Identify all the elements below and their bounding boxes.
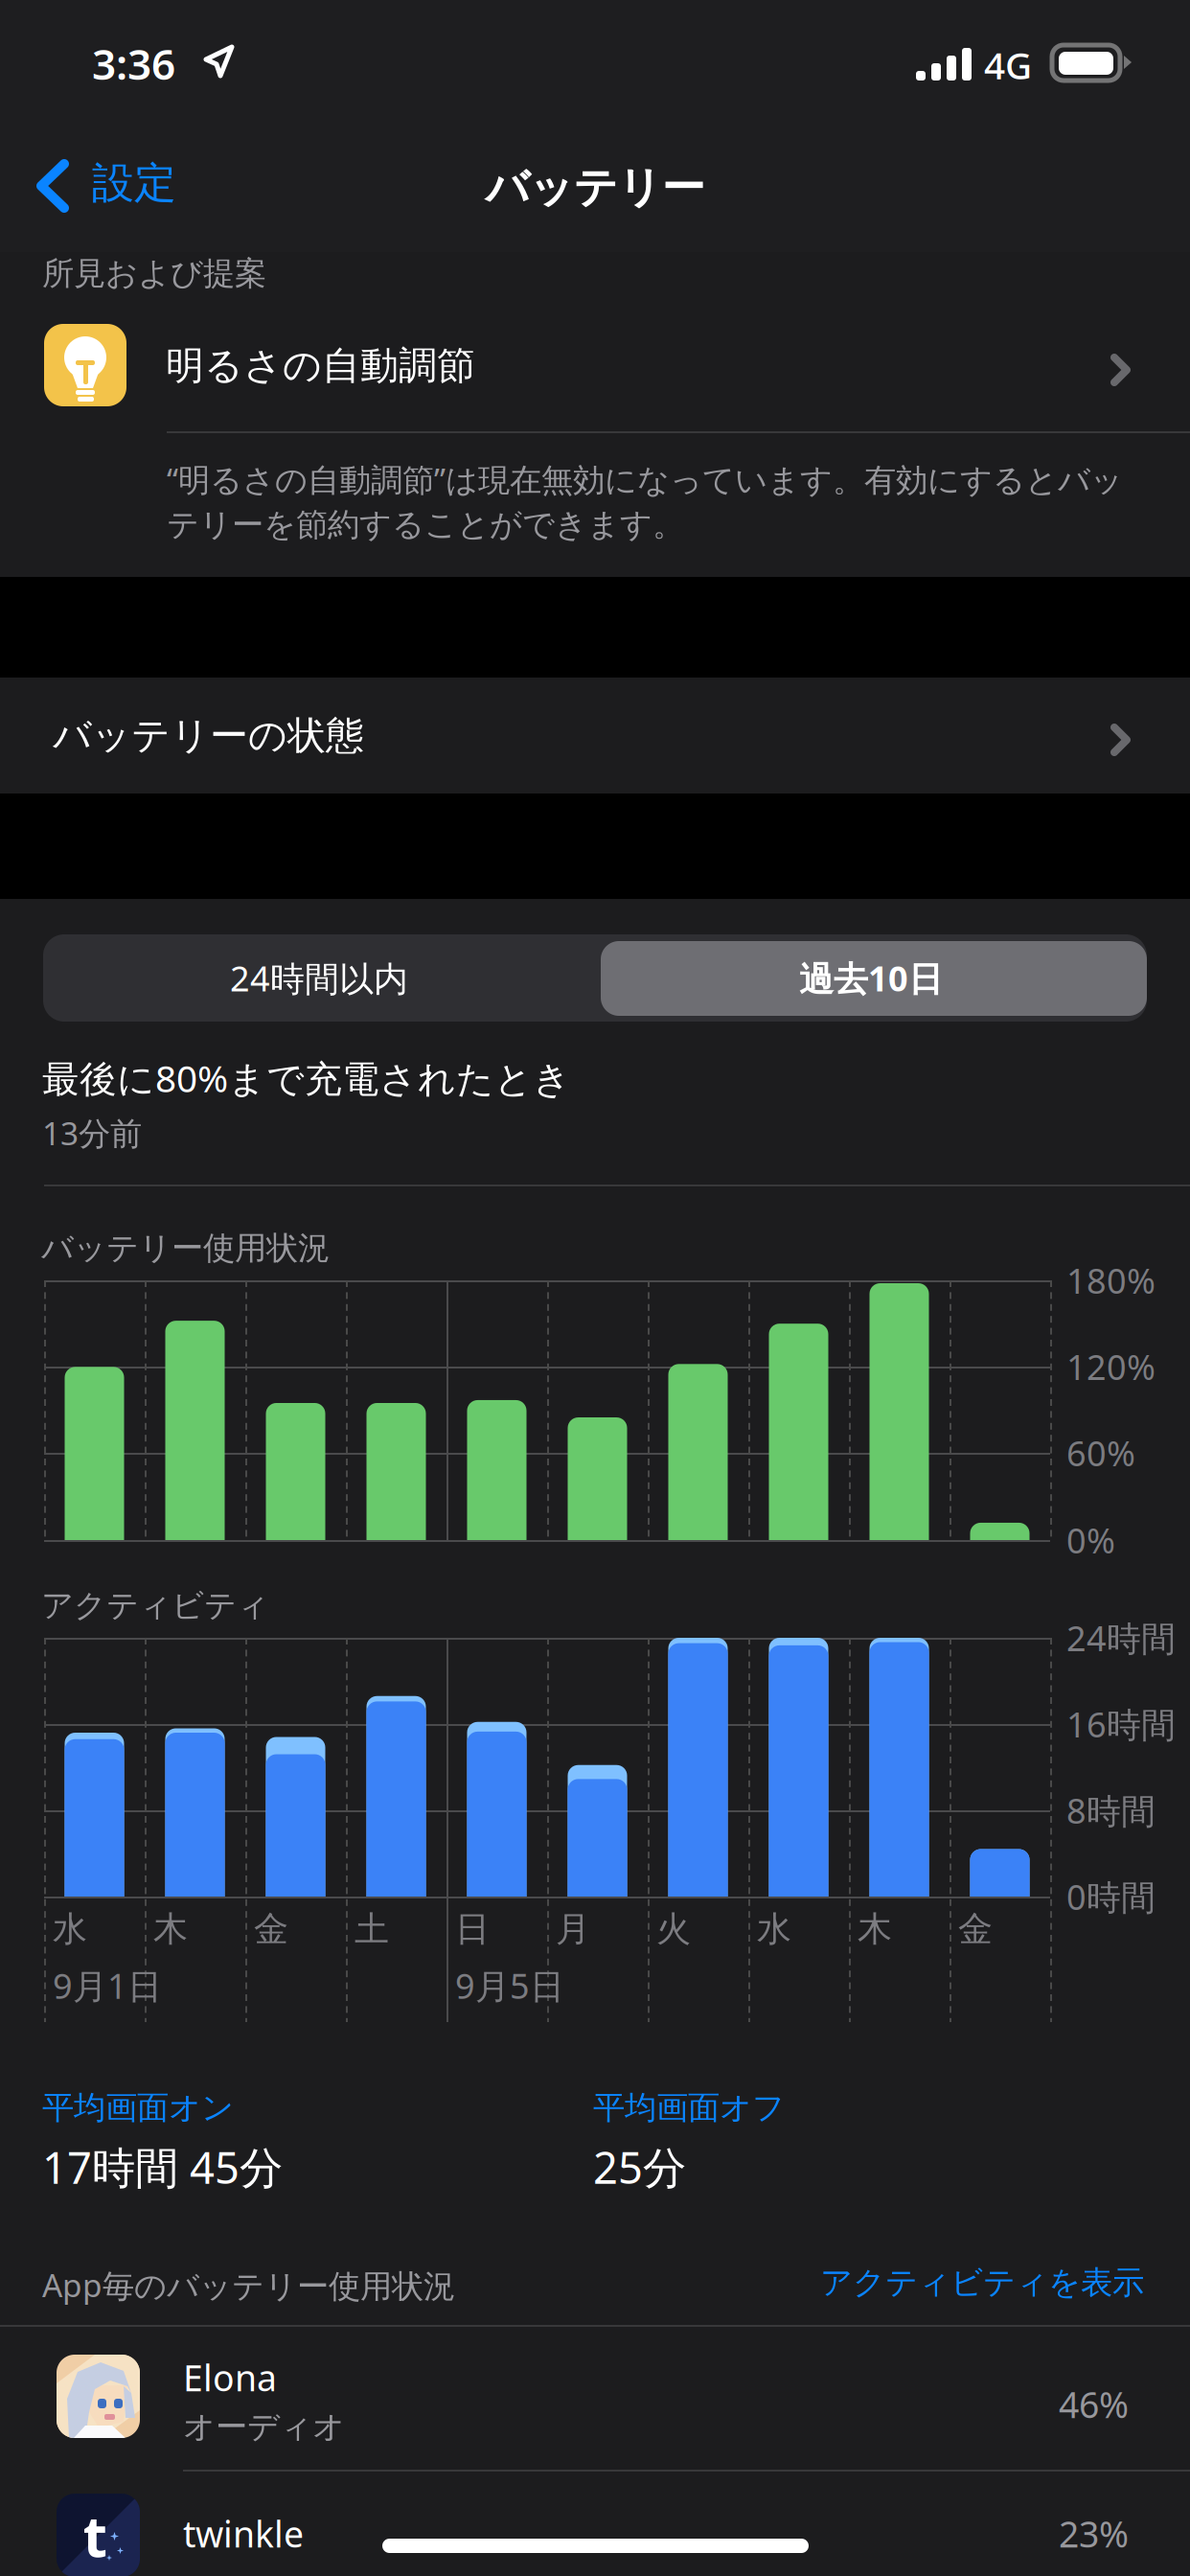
staticText: 25分 [593, 2138, 686, 2196]
staticText: 火 [656, 1908, 691, 1950]
staticText: App毎のバッテリー使用状況 [42, 2264, 455, 2306]
staticText: 土 [355, 1908, 389, 1950]
button[interactable]: 過去10日 [595, 934, 1147, 1022]
button[interactable]: バッテリーの状態 [0, 678, 1190, 793]
staticText: 3:36 [92, 35, 175, 91]
staticText: twinkle [183, 2510, 304, 2557]
staticText: 0% [1066, 1517, 1115, 1563]
staticText: 平均画面オン [42, 2088, 234, 2127]
staticText: 設定 [92, 157, 176, 209]
staticText: 46% [1059, 2380, 1129, 2428]
staticText: 60% [1066, 1430, 1135, 1476]
staticText: 木 [153, 1908, 188, 1950]
staticText: 9月1日 [53, 1963, 162, 2008]
button[interactable]: 明るさの自動調節 [0, 309, 1190, 424]
button[interactable]: 設定 [33, 146, 253, 230]
staticText: 日 [455, 1908, 490, 1950]
staticText: 平均画面オフ [593, 2088, 785, 2127]
button[interactable]: 24時間以内 [43, 934, 595, 1022]
staticText: 9月5日 [455, 1963, 564, 2008]
staticText: 過去10日 [799, 955, 943, 1001]
staticText: 24時間 [1066, 1615, 1176, 1661]
staticText: “明るさの自動調節”は現在無効になっています。有効にするとバッテリーを節約するこ… [167, 458, 1123, 545]
staticText: 180% [1066, 1257, 1156, 1303]
staticText: 最後に80%まで充電されたとき [42, 1053, 571, 1102]
staticText: バッテリー使用状況 [41, 1229, 330, 1268]
button[interactable]: Elona [0, 2325, 1190, 2471]
staticText: t [83, 2498, 107, 2573]
staticText: アクティビティを表示 [820, 2263, 1144, 2302]
staticText: 金 [254, 1908, 288, 1950]
staticText: 120% [1066, 1344, 1156, 1389]
staticText: 水 [53, 1908, 87, 1950]
button[interactable]: アクティビティを表示 [761, 2259, 1144, 2307]
staticText: アクティビティ [41, 1586, 269, 1625]
staticText: 16時間 [1066, 1701, 1176, 1747]
staticText: 13分前 [42, 1112, 142, 1154]
staticText: 明るさの自動調節 [166, 342, 475, 389]
button[interactable]: t [0, 2470, 1190, 2576]
staticText: Elona [183, 2354, 277, 2401]
staticText: 月 [556, 1908, 590, 1950]
staticText: オーディオ [183, 2407, 345, 2447]
staticText: 所見および提案 [42, 254, 266, 293]
staticText: 4G [984, 40, 1032, 89]
staticText: 17時間 45分 [42, 2138, 283, 2196]
staticText: 0時間 [1066, 1874, 1156, 1919]
staticText: 金 [958, 1908, 993, 1950]
staticText: 水 [757, 1908, 791, 1950]
staticText: 木 [858, 1908, 892, 1950]
staticText: 8時間 [1066, 1787, 1156, 1833]
staticText: バッテリー [485, 161, 705, 215]
staticText: バッテリーの状態 [53, 712, 364, 759]
staticText: 24時間以内 [230, 955, 408, 1001]
staticText: 23% [1059, 2510, 1129, 2557]
